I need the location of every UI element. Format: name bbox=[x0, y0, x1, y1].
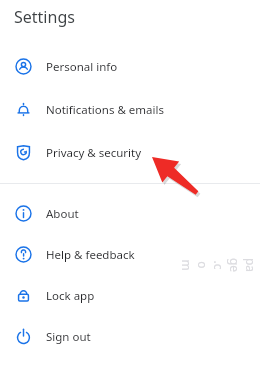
staticText: Sign out bbox=[46, 329, 91, 345]
staticText: Privacy & security bbox=[46, 145, 142, 161]
staticText: Lock app bbox=[46, 288, 95, 304]
staticText: Personal info bbox=[46, 59, 118, 75]
button[interactable]: Personal info bbox=[0, 45, 260, 88]
button[interactable]: Lock app bbox=[0, 275, 260, 316]
button[interactable]: Notifications & emails bbox=[0, 88, 260, 131]
staticText: About bbox=[46, 206, 79, 222]
staticText: Notifications & emails bbox=[46, 102, 164, 118]
button[interactable]: Privacy & security bbox=[0, 131, 260, 174]
staticText: Help & feedback bbox=[46, 247, 135, 263]
button[interactable]: Sign out bbox=[0, 316, 260, 357]
button[interactable]: Help & feedback bbox=[0, 234, 260, 275]
staticText: ©thegeekpage.com bbox=[179, 257, 260, 273]
button[interactable]: About bbox=[0, 193, 260, 234]
staticText: Settings bbox=[14, 6, 75, 28]
